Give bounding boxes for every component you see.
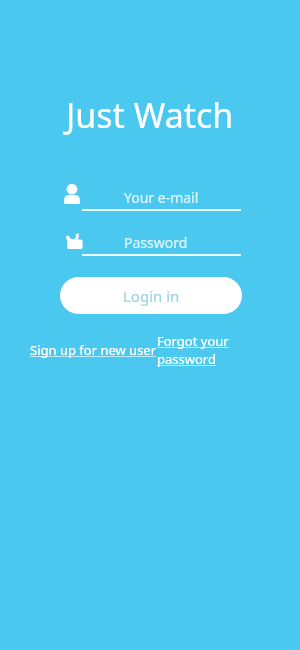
staticText: Just Watch [66, 92, 234, 138]
staticText: Password [124, 233, 188, 252]
staticText: Forgot your password [157, 332, 270, 368]
button[interactable]: Login in [60, 277, 242, 314]
staticText: Sign up for new user [30, 341, 157, 359]
other: User [62, 184, 82, 204]
other: Password [61, 228, 83, 250]
staticText: Login in [123, 286, 180, 306]
button[interactable]: User [58, 182, 244, 214]
staticText: Your e-mail [124, 188, 199, 207]
button[interactable]: Forgot your password [157, 332, 270, 368]
button[interactable]: Sign up for new user [30, 341, 157, 359]
button[interactable]: Password [58, 227, 244, 259]
